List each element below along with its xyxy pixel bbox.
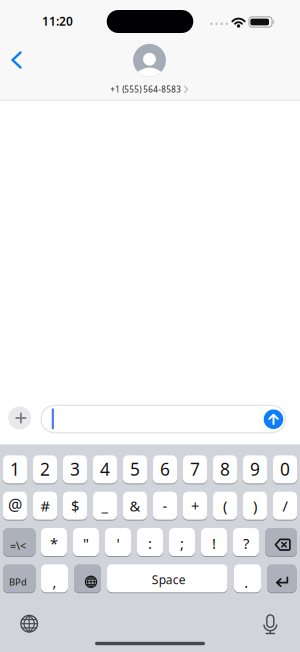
staticText: ,	[52, 572, 56, 591]
button[interactable]: '	[105, 527, 131, 556]
button[interactable]: Send	[264, 409, 283, 429]
button[interactable]: ,	[41, 564, 68, 593]
button[interactable]: 9	[243, 455, 267, 484]
button[interactable]: 3	[63, 455, 87, 484]
button[interactable]: 7	[183, 455, 207, 484]
button[interactable]: /	[273, 491, 297, 520]
button[interactable]: 8	[213, 455, 237, 484]
button[interactable]: iMessage text field	[40, 405, 286, 433]
staticText: #	[40, 496, 49, 515]
button[interactable]: Switch keyboard	[20, 614, 39, 633]
staticText: 1	[10, 457, 20, 480]
staticText: ;	[180, 534, 184, 553]
staticText: +	[191, 496, 199, 515]
staticText: =\<	[10, 538, 26, 553]
staticText: 2	[40, 457, 50, 480]
button[interactable]: 5	[123, 455, 147, 484]
button[interactable]: .	[234, 564, 261, 593]
button[interactable]: )	[243, 491, 267, 520]
button[interactable]: #	[33, 491, 57, 520]
button[interactable]: =\<	[3, 527, 35, 556]
button[interactable]: -	[153, 491, 177, 520]
button[interactable]: Space	[107, 564, 227, 593]
button[interactable]: :	[137, 527, 163, 556]
staticText: &	[129, 496, 140, 515]
staticText: $	[71, 496, 79, 515]
staticText: 0	[280, 457, 290, 480]
staticText: 4	[100, 457, 110, 480]
button[interactable]: 1	[3, 455, 27, 484]
button[interactable]: "	[73, 527, 99, 556]
button[interactable]: 6	[153, 455, 177, 484]
button[interactable]: Add attachment	[8, 406, 31, 429]
staticText: +1 (555) 564-8583	[110, 84, 181, 95]
staticText: 6	[160, 457, 170, 480]
button[interactable]: *	[41, 527, 67, 556]
staticText: )	[253, 496, 257, 515]
button[interactable]: &	[123, 491, 147, 520]
staticText: :	[148, 534, 152, 553]
staticText: -	[162, 496, 167, 515]
button[interactable]: BPd	[3, 564, 35, 593]
staticText: 5	[130, 457, 140, 480]
staticText: 11:20	[42, 13, 73, 29]
button[interactable]: Return	[267, 564, 296, 593]
button[interactable]: Back	[4, 47, 30, 72]
staticText: 9	[250, 457, 260, 480]
staticText: BPd	[9, 576, 27, 588]
button[interactable]: ?	[233, 527, 259, 556]
staticText: !	[212, 534, 216, 553]
staticText: 3	[70, 457, 80, 480]
staticText: '	[116, 534, 119, 553]
button[interactable]: Dictate	[261, 614, 280, 634]
staticText: "	[83, 534, 89, 553]
button[interactable]: Contact info, +1 (555) 564-8583	[110, 44, 189, 95]
staticText: _	[101, 496, 108, 515]
button[interactable]: (	[213, 491, 237, 520]
staticText: 8	[220, 457, 230, 480]
staticText: /	[282, 496, 287, 515]
button[interactable]: Next keyboard	[74, 564, 101, 593]
button[interactable]: 2	[33, 455, 57, 484]
button[interactable]: ;	[169, 527, 195, 556]
button[interactable]: _	[93, 491, 117, 520]
button[interactable]: @	[3, 491, 27, 520]
staticText: *	[50, 534, 58, 553]
staticText: Space	[152, 572, 186, 587]
staticText: @	[8, 494, 22, 515]
button[interactable]: +	[183, 491, 207, 520]
staticText: ?	[243, 534, 249, 553]
button[interactable]: !	[201, 527, 227, 556]
button[interactable]: $	[63, 491, 87, 520]
button[interactable]: 4	[93, 455, 117, 484]
staticText: .	[244, 573, 248, 592]
staticText: 7	[190, 457, 200, 480]
staticText: (	[223, 496, 227, 515]
button[interactable]: 0	[273, 455, 297, 484]
button[interactable]: Delete	[265, 527, 297, 556]
